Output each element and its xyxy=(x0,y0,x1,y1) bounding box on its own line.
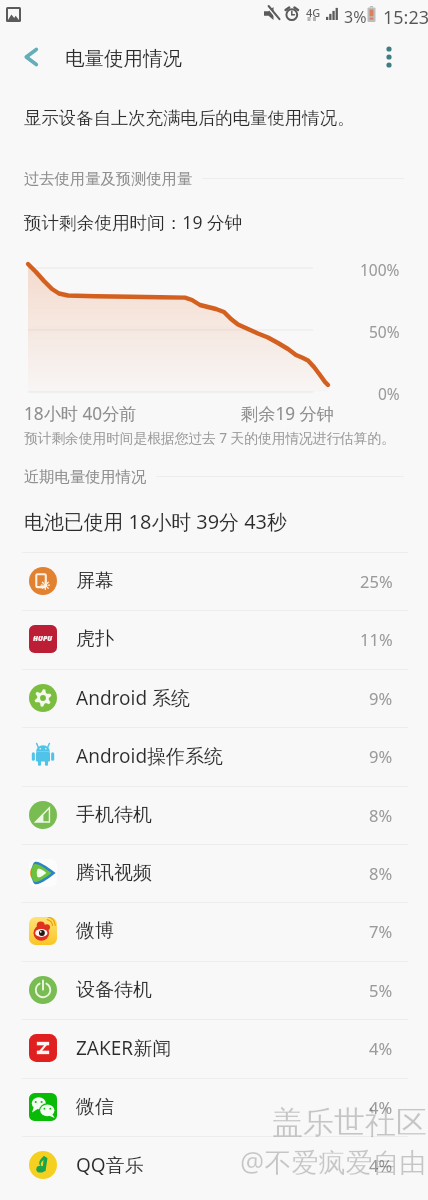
staticText: 设备待机 xyxy=(76,978,152,1002)
button[interactable]: Back xyxy=(14,39,50,75)
button[interactable]: 腾讯视频 xyxy=(0,844,428,902)
staticText: 8% xyxy=(369,862,393,884)
staticText: 25% xyxy=(360,570,393,592)
staticText: 电池已使用 18小时 39分 43秒 xyxy=(24,508,287,535)
staticText: 100% xyxy=(360,259,400,280)
button[interactable]: QQ音乐 xyxy=(0,1136,428,1194)
button[interactable]: HUPU xyxy=(0,610,428,668)
staticText: 7% xyxy=(369,920,393,942)
staticText: 屏幕 xyxy=(76,569,114,593)
staticText: 50% xyxy=(369,321,400,342)
staticText: HUPU xyxy=(33,634,53,644)
staticText: 0% xyxy=(378,383,400,404)
staticText: 腾讯视频 xyxy=(76,861,152,885)
button[interactable]: Android操作系统 xyxy=(0,727,428,785)
staticText: ZAKER新闻 xyxy=(76,1035,172,1061)
staticText: 微信 xyxy=(76,1095,114,1119)
staticText: 15:23 xyxy=(383,5,428,30)
staticText: 11% xyxy=(360,628,393,650)
staticText: 9% xyxy=(369,745,393,767)
staticText: 4G xyxy=(306,5,321,20)
staticText: 4% xyxy=(369,1037,393,1059)
staticText: Android操作系统 xyxy=(76,743,224,769)
button[interactable]: 设备待机 xyxy=(0,961,428,1019)
staticText: 过去使用量及预测使用量 xyxy=(24,169,193,188)
staticText: 4% xyxy=(369,1154,393,1176)
staticText: 手机待机 xyxy=(76,803,152,827)
staticText: 预计剩余使用时间：19 分钟 xyxy=(24,210,243,234)
button[interactable]: 屏幕 xyxy=(0,552,428,610)
button[interactable]: 手机待机 xyxy=(0,786,428,844)
staticText: @不爱疯爱自由 xyxy=(240,1143,427,1180)
button[interactable]: More options xyxy=(370,38,408,76)
staticText: 电量使用情况 xyxy=(65,46,182,71)
staticText: Android 系统 xyxy=(76,685,191,711)
staticText: 8% xyxy=(369,804,393,826)
staticText: QQ音乐 xyxy=(76,1152,144,1178)
staticText: 5% xyxy=(369,979,393,1001)
button[interactable]: 微信 xyxy=(0,1078,428,1136)
staticText: 18小时 40分前 xyxy=(24,402,137,425)
staticText: 4% xyxy=(369,1096,393,1118)
staticText: 虎扑 xyxy=(76,627,114,651)
staticText: 3% xyxy=(344,6,367,28)
staticText: 显示设备自上次充满电后的电量使用情况。 xyxy=(24,107,355,129)
staticText: 预计剩余使用时间是根据您过去 7 天的使用情况进行估算的。 xyxy=(24,428,395,447)
staticText: 微博 xyxy=(76,919,114,943)
staticText: 近期电量使用情况 xyxy=(24,467,147,486)
button[interactable]: ZAKER新闻 xyxy=(0,1019,428,1077)
button[interactable]: 微博 xyxy=(0,902,428,960)
staticText: 剩余19 分钟 xyxy=(241,402,334,425)
button[interactable]: Android 系统 xyxy=(0,669,428,727)
staticText: 9% xyxy=(369,687,393,709)
staticText: 盖乐世社区 xyxy=(272,1103,427,1142)
